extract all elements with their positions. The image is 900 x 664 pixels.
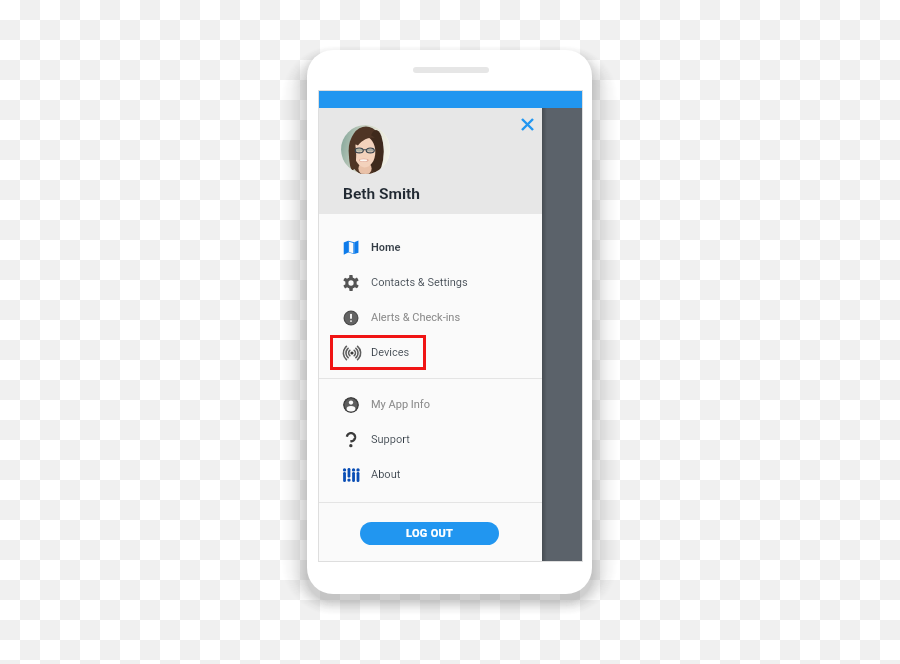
- staticText: Support: [371, 433, 410, 446]
- staticText: Alerts & Check-ins: [371, 311, 461, 324]
- button[interactable]: Close drawer: [515, 112, 539, 136]
- staticText: Devices: [371, 346, 410, 359]
- staticText: LOG OUT: [406, 527, 454, 540]
- button[interactable]: Support: [319, 422, 542, 457]
- button[interactable]: About: [319, 457, 542, 492]
- staticText: Home: [371, 241, 401, 254]
- staticText: Contacts & Settings: [371, 276, 468, 289]
- button[interactable]: Home: [319, 230, 542, 265]
- button[interactable]: Close drawer: [319, 108, 542, 214]
- button[interactable]: LOG OUT: [360, 522, 499, 545]
- button[interactable]: Close navigation drawer: [542, 108, 582, 561]
- staticText: Beth Smith: [343, 185, 421, 203]
- button[interactable]: Devices: [319, 335, 542, 370]
- staticText: My App Info: [371, 398, 430, 411]
- staticText: About: [371, 468, 401, 481]
- button[interactable]: My App Info: [319, 387, 542, 422]
- button[interactable]: Contacts & Settings: [319, 265, 542, 300]
- button[interactable]: Alerts & Check-ins: [319, 300, 542, 335]
